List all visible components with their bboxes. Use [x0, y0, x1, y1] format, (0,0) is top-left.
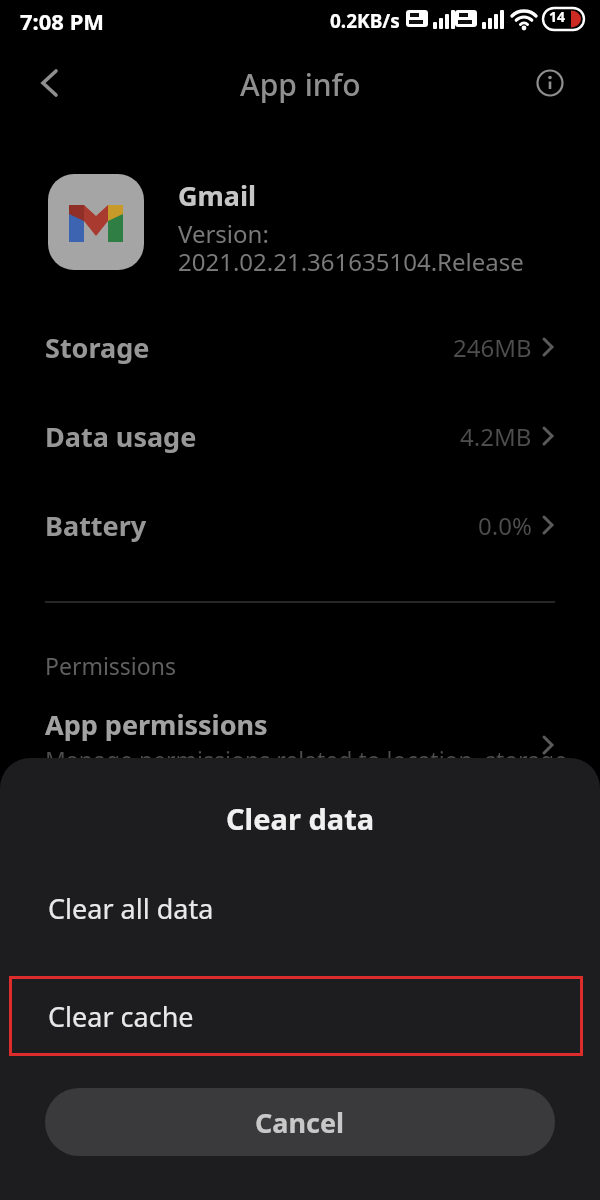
- staticText: Cancel: [255, 1104, 345, 1141]
- staticText: Clear all data: [48, 890, 214, 927]
- staticText: Manage permissions related to location, …: [45, 744, 568, 775]
- staticText: Storage: [45, 329, 150, 366]
- button[interactable]: [536, 69, 564, 97]
- staticText: 14: [549, 7, 566, 26]
- staticText: Gmail: [178, 177, 257, 214]
- staticText: 7:08 PM: [20, 6, 105, 36]
- staticText: Clear cache: [48, 998, 194, 1035]
- button[interactable]: Storage: [0, 303, 600, 391]
- button[interactable]: [38, 68, 62, 98]
- button[interactable]: Clear all data: [0, 868, 600, 948]
- staticText: 0.0%: [478, 509, 532, 542]
- button[interactable]: Cancel: [45, 1088, 555, 1156]
- button[interactable]: Clear cache: [9, 976, 583, 1056]
- staticText: 246MB: [453, 331, 532, 364]
- button[interactable]: Battery: [0, 481, 600, 569]
- staticText: 2021.02.21.361635104.Release: [178, 245, 524, 278]
- staticText: Data usage: [45, 418, 197, 455]
- staticText: 4.2MB: [460, 420, 532, 453]
- staticText: Battery: [45, 507, 147, 544]
- staticText: Clear data: [226, 799, 375, 838]
- staticText: Version:: [178, 217, 269, 250]
- button[interactable]: Data usage: [0, 392, 600, 480]
- button[interactable]: App permissions: [0, 692, 600, 772]
- staticText: App permissions: [45, 706, 268, 743]
- staticText: Permissions: [45, 650, 176, 681]
- staticText: 0.2KB/s: [330, 8, 400, 34]
- staticText: App info: [240, 64, 361, 104]
